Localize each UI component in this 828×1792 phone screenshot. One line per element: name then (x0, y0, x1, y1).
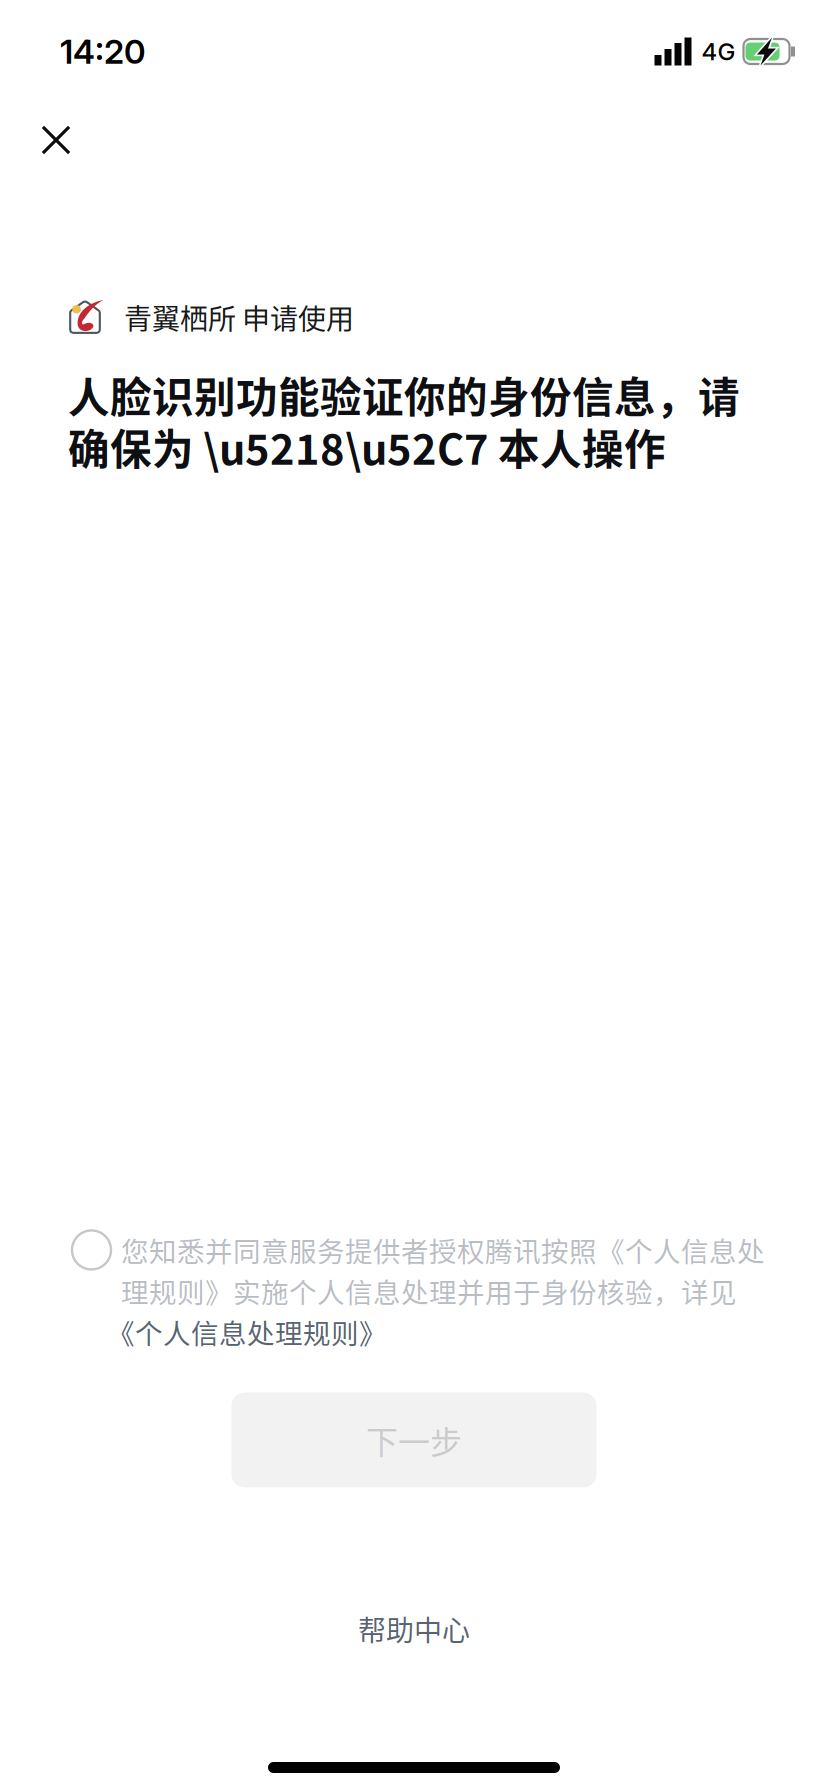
button[interactable]: 下一步 (231, 1392, 596, 1487)
staticText: 青翼栖所 申请使用 (124, 297, 354, 337)
button[interactable]: 《个人信息处理规则》 (121, 1311, 401, 1352)
staticText: 帮助中心 (358, 1608, 470, 1649)
staticText: 4G (701, 37, 735, 66)
staticText: 《个人信息处理规则》 (107, 1312, 387, 1352)
staticText: 下一步 (366, 1417, 462, 1463)
button[interactable]: 帮助中心 (346, 1596, 482, 1661)
button[interactable]: Close (0, 103, 100, 183)
staticText: 确保为 \u5218\u52C7 本人操作 (68, 416, 666, 477)
staticText: 14:20 (60, 31, 146, 72)
button[interactable]: Agree to the personal information rules (62, 1224, 121, 1283)
staticText: 理规则》实施个人信息处理并用于身份核验，详见 (121, 1271, 737, 1311)
staticText: 人脸识别功能验证你的身份信息，请 (68, 364, 740, 425)
staticText: 您知悉并同意服务提供者授权腾讯按照《个人信息处 (121, 1230, 765, 1270)
